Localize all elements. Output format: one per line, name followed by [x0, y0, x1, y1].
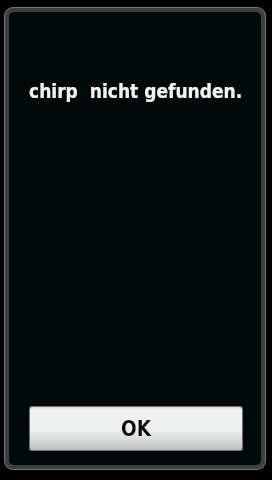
button[interactable]: OK	[29, 406, 243, 451]
staticText: OK	[121, 417, 151, 441]
staticText: chirp nicht gefunden.	[29, 80, 243, 102]
